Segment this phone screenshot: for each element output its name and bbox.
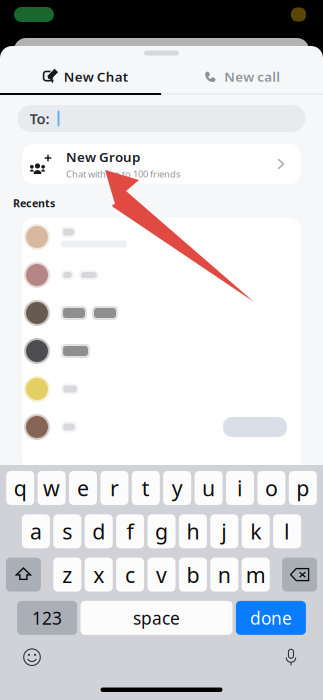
staticText: To: — [29, 109, 49, 128]
staticText: k — [250, 517, 261, 545]
staticText: c — [125, 560, 135, 589]
button[interactable]: Delete — [282, 558, 317, 592]
staticText: Chat with up to 100 friends — [66, 168, 180, 180]
staticText: o — [265, 474, 278, 502]
staticText: v — [156, 560, 167, 589]
staticText: u — [202, 474, 215, 502]
button[interactable]: z — [53, 558, 81, 592]
button[interactable]: j — [210, 514, 238, 548]
button[interactable]: c — [116, 558, 144, 592]
button[interactable]: p — [289, 471, 317, 505]
staticText: z — [62, 560, 72, 589]
staticText: w — [43, 474, 60, 502]
staticText: e — [77, 474, 89, 502]
staticText: done — [250, 606, 292, 629]
button[interactable]: e — [69, 471, 97, 505]
button[interactable]: t — [132, 471, 160, 505]
button[interactable]: b — [179, 558, 207, 592]
button[interactable]: v — [147, 558, 175, 592]
button[interactable]: w — [38, 471, 66, 505]
staticText: space — [133, 606, 180, 629]
button[interactable] — [22, 218, 301, 256]
button[interactable]: k — [242, 514, 270, 548]
button[interactable] — [22, 294, 301, 332]
staticText: New Group — [66, 148, 140, 166]
button[interactable]: f — [116, 514, 144, 548]
staticText: d — [92, 517, 105, 545]
staticText: 123 — [32, 606, 62, 629]
staticText: s — [62, 517, 72, 545]
staticText: New Chat — [64, 68, 128, 85]
staticText: x — [93, 560, 104, 589]
button[interactable]: h — [179, 514, 207, 548]
staticText: y — [172, 474, 183, 502]
button[interactable]: Dictate — [276, 645, 306, 669]
button[interactable]: y — [163, 471, 191, 505]
button[interactable] — [22, 370, 301, 408]
staticText: f — [127, 517, 134, 545]
staticText: a — [30, 517, 42, 545]
staticText: n — [218, 560, 231, 589]
button[interactable]: Shift — [6, 558, 41, 592]
button[interactable]: i — [226, 471, 254, 505]
button[interactable]: Emoji — [17, 645, 47, 669]
staticText: r — [110, 474, 119, 502]
button[interactable]: g — [147, 514, 175, 548]
button[interactable]: r — [100, 471, 128, 505]
staticText: g — [155, 517, 168, 545]
button[interactable]: s — [53, 514, 81, 548]
staticText: New call — [224, 68, 280, 85]
staticText: h — [186, 517, 199, 545]
button[interactable]: New Group — [22, 144, 301, 184]
button[interactable]: x — [85, 558, 113, 592]
button[interactable]: a — [22, 514, 50, 548]
button[interactable]: New call — [161, 60, 323, 93]
staticText: Recents — [13, 196, 55, 210]
staticText: p — [296, 474, 309, 502]
staticText: i — [237, 474, 243, 502]
staticText: l — [284, 517, 290, 545]
button[interactable]: n — [210, 558, 238, 592]
button[interactable]: m — [242, 558, 270, 592]
button[interactable]: space — [80, 601, 232, 635]
button[interactable] — [22, 408, 301, 446]
button[interactable]: 123 — [17, 601, 77, 635]
staticText: q — [14, 474, 27, 502]
button[interactable] — [22, 256, 301, 294]
staticText: t — [142, 474, 150, 502]
staticText: m — [246, 560, 266, 589]
staticText: j — [221, 517, 227, 545]
button[interactable]: o — [257, 471, 285, 505]
button[interactable]: l — [273, 514, 301, 548]
button[interactable]: q — [6, 471, 34, 505]
staticText: b — [186, 560, 199, 589]
button[interactable]: d — [85, 514, 113, 548]
button[interactable]: New Chat — [0, 60, 161, 93]
button[interactable] — [22, 332, 301, 370]
button[interactable]: u — [195, 471, 223, 505]
button[interactable]: done — [236, 601, 306, 635]
